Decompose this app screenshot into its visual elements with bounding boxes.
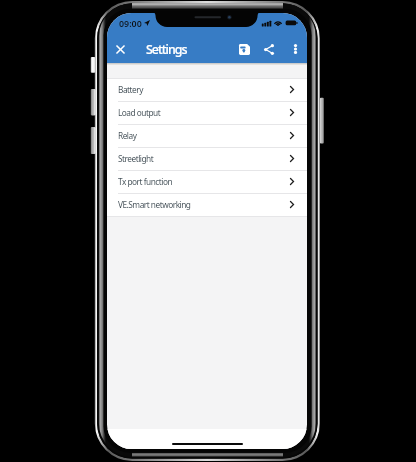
button[interactable]: Close <box>109 38 131 60</box>
staticText: Settings <box>146 41 187 58</box>
button[interactable]: Load output <box>107 102 307 124</box>
staticText: Battery <box>118 84 143 95</box>
staticText: Relay <box>118 130 137 141</box>
button[interactable]: Battery <box>107 79 307 101</box>
button[interactable]: Share <box>258 38 280 60</box>
button[interactable]: Save <box>233 38 255 60</box>
staticText: VE.Smart networking <box>118 199 191 210</box>
button[interactable]: Streetlight <box>107 148 307 170</box>
staticText: Streetlight <box>118 153 154 164</box>
staticText: 09:00 <box>119 17 142 29</box>
button[interactable]: Tx port function <box>107 171 307 193</box>
button[interactable]: Relay <box>107 125 307 147</box>
button[interactable]: More options <box>284 38 306 60</box>
button[interactable]: VE.Smart networking <box>107 194 307 216</box>
staticText: Tx port function <box>118 176 173 187</box>
staticText: Load output <box>118 107 161 118</box>
